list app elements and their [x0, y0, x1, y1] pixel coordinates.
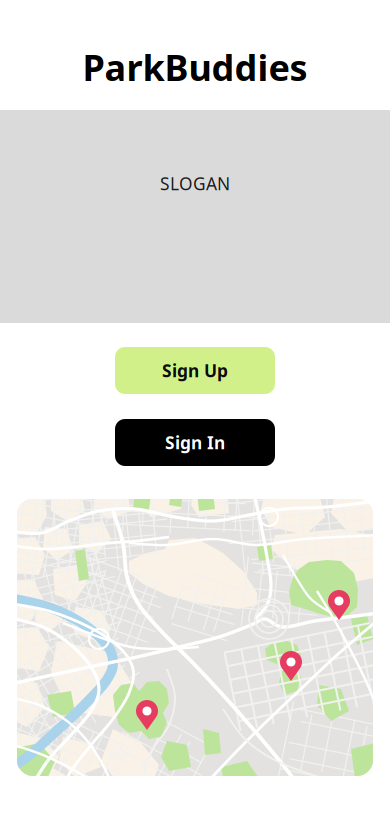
- button[interactable]: Sign In: [115, 419, 275, 466]
- staticText: Sign Up: [162, 359, 228, 382]
- button[interactable]: Sign Up: [115, 347, 275, 394]
- staticText: ParkBuddies: [82, 43, 307, 91]
- staticText: SLOGAN: [160, 172, 230, 195]
- staticText: Sign In: [165, 431, 225, 454]
